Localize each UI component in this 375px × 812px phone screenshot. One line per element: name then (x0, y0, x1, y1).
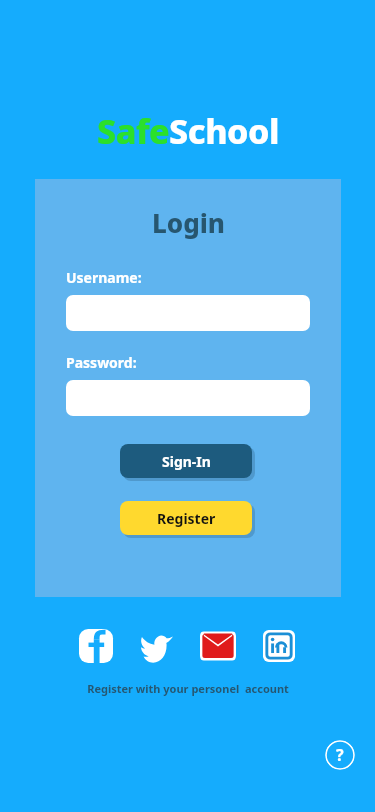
button[interactable]: Sign-In (120, 444, 252, 478)
button[interactable]: Help (325, 740, 355, 770)
button[interactable]: Sign in with LinkedIn (261, 628, 297, 664)
staticText: Password: (66, 353, 137, 372)
button[interactable] (66, 380, 310, 416)
button[interactable]: Sign in with Twitter (139, 628, 175, 664)
staticText: Sign-In (162, 452, 211, 471)
staticText: Register with your personel account (87, 681, 289, 696)
button[interactable]: Register (120, 501, 252, 535)
staticText: Login (152, 205, 225, 240)
button[interactable]: Sign in with Email (200, 628, 236, 664)
staticText: ? (336, 744, 344, 766)
staticText: Username: (66, 268, 142, 287)
staticText: Register (157, 509, 216, 528)
button[interactable]: Sign in with Facebook (78, 628, 114, 664)
staticText: SafeSchool (97, 108, 279, 154)
button[interactable] (66, 295, 310, 331)
